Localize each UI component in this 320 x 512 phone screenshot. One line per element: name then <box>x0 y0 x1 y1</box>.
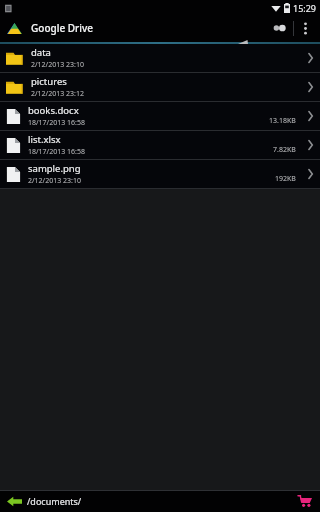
staticText: sample.png <box>28 162 81 175</box>
staticText: 2/12/2013 23:10 <box>31 60 84 70</box>
button[interactable]: Toggle view <box>265 16 293 40</box>
button[interactable]: Back <box>4 490 24 512</box>
staticText: 192KB <box>275 174 296 184</box>
button[interactable]: pictures <box>0 73 320 101</box>
staticText: 15:29 <box>293 2 317 14</box>
staticText: 7.82KB <box>273 145 296 155</box>
staticText: 18/17/2013 16:58 <box>28 118 85 128</box>
staticText: 13.18KB <box>269 116 296 126</box>
button[interactable]: list.xlsx <box>0 131 320 159</box>
button[interactable]: sample.png <box>0 160 320 188</box>
staticText: data <box>31 46 51 59</box>
staticText: 18/17/2013 16:58 <box>28 147 85 157</box>
button[interactable]: Cart <box>292 490 318 512</box>
staticText: pictures <box>31 75 67 88</box>
button[interactable]: More options <box>294 16 316 40</box>
button[interactable]: books.docx <box>0 102 320 130</box>
staticText: 2/12/2013 23:12 <box>31 89 84 99</box>
staticText: /documents/ <box>27 495 292 507</box>
button[interactable]: data <box>0 44 320 72</box>
staticText: Google Drive <box>31 21 265 35</box>
staticText: 2/12/2013 23:10 <box>28 176 81 186</box>
staticText: books.docx <box>28 104 79 117</box>
staticText: list.xlsx <box>28 133 61 146</box>
